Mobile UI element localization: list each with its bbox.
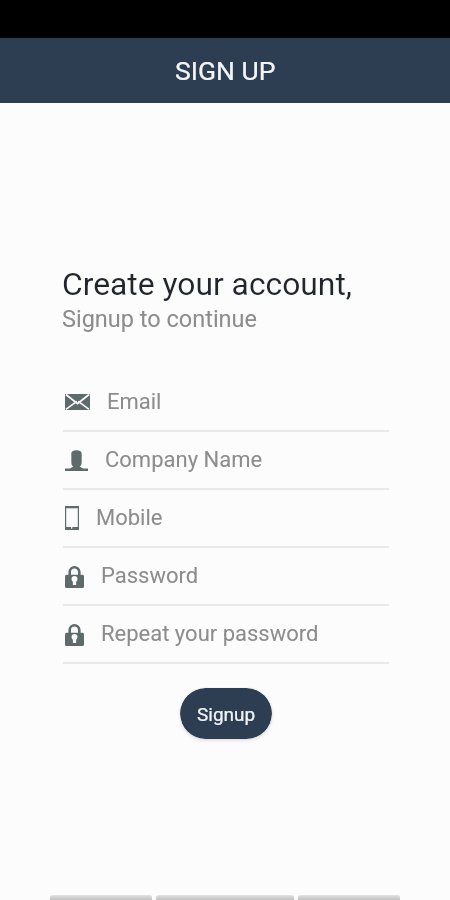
staticText: Email: [107, 389, 162, 415]
button[interactable]: Email: [62, 374, 390, 432]
staticText: Signup: [197, 703, 256, 725]
staticText: Company Name: [105, 447, 263, 473]
button[interactable]: Sign up with Facebook: [156, 895, 294, 900]
staticText: Repeat your password: [101, 621, 319, 647]
staticText: Password: [101, 563, 199, 589]
button[interactable]: Signup: [180, 688, 272, 739]
button[interactable]: Password: [62, 548, 390, 606]
button[interactable]: Mobile: [62, 490, 390, 548]
staticText: Create your account,: [62, 265, 353, 302]
button[interactable]: Sign up with Twitter: [298, 895, 400, 900]
staticText: SIGN UP: [175, 55, 276, 86]
button[interactable]: Company Name: [62, 432, 390, 490]
staticText: Signup to continue: [62, 305, 257, 333]
staticText: Mobile: [96, 505, 163, 531]
button[interactable]: Repeat your password: [62, 606, 390, 664]
button[interactable]: SIGN UP: [0, 38, 450, 103]
button[interactable]: Sign up with Google: [50, 895, 152, 900]
